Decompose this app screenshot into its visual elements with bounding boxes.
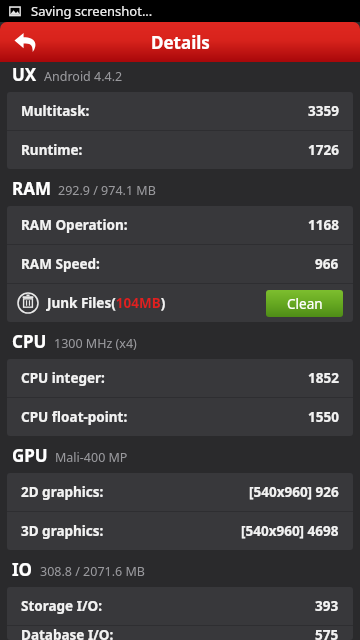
button[interactable]: RAM Speed: (7, 245, 353, 283)
staticText: 1852 (308, 369, 339, 387)
staticText: 966 (315, 255, 339, 273)
button[interactable]: 3D graphics: (7, 512, 353, 550)
button[interactable]: Runtime: (7, 131, 353, 169)
staticText: Junk Files(104MB) (47, 294, 166, 312)
staticText: Saving screenshot... (31, 2, 153, 20)
staticText: RAM Operation: (21, 216, 128, 234)
staticText: Android 4.4.2 (44, 68, 123, 85)
staticText: RAM (12, 177, 51, 200)
button[interactable]: 2D graphics: (7, 473, 353, 511)
staticText: 3359 (308, 102, 339, 120)
staticText: [540x960] 4698 (241, 522, 339, 540)
staticText: 308.8 / 2071.6 MB (40, 563, 145, 580)
button[interactable]: Multitask: (7, 92, 353, 130)
staticText: [540x960] 926 (249, 483, 339, 501)
staticText: Clean (287, 295, 323, 313)
staticText: UX (12, 63, 37, 86)
staticText: 1726 (308, 141, 339, 159)
staticText: Mali-400 MP (55, 449, 128, 466)
staticText: CPU integer: (21, 369, 105, 387)
staticText: GPU (12, 444, 48, 467)
staticText: 1168 (308, 216, 339, 234)
button[interactable]: Storage I/O: (7, 587, 353, 625)
staticText: 575 (315, 626, 339, 640)
staticText: RAM Speed: (21, 255, 100, 273)
button[interactable]: Database I/O: (7, 626, 353, 640)
staticText: 393 (315, 597, 339, 615)
staticText: CPU (12, 330, 47, 353)
button[interactable]: Clean (266, 290, 343, 317)
button[interactable]: CPU integer: (7, 359, 353, 397)
staticText: 1550 (308, 408, 339, 426)
button[interactable]: Back (6, 22, 46, 62)
staticText: 2D graphics: (21, 483, 104, 501)
staticText: Storage I/O: (21, 597, 103, 615)
button[interactable]: CPU float-point: (7, 398, 353, 436)
staticText: 1300 MHz (x4) (54, 335, 137, 352)
staticText: Multitask: (21, 102, 90, 120)
staticText: IO (12, 558, 33, 581)
button[interactable]: Junk Files(104MB) (7, 284, 353, 322)
button[interactable]: RAM Operation: (7, 206, 353, 244)
staticText: Runtime: (21, 141, 83, 159)
staticText: 292.9 / 974.1 MB (58, 182, 156, 199)
staticText: Database I/O: (21, 626, 114, 640)
staticText: CPU float-point: (21, 408, 128, 426)
staticText: Details (151, 31, 210, 54)
staticText: 3D graphics: (21, 522, 104, 540)
